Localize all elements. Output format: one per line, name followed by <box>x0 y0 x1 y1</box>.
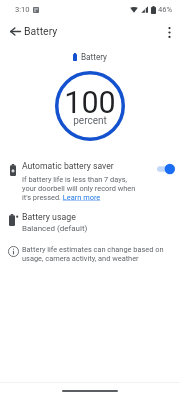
staticText: If battery life is less than 7 days, you… <box>22 175 140 202</box>
staticText: 3:10 <box>15 5 30 14</box>
staticText: Balanced (default) <box>22 224 88 233</box>
staticText: Battery usage <box>22 212 76 222</box>
staticText: Automatic battery saver <box>22 161 114 171</box>
staticText: 100 <box>64 85 116 121</box>
staticText: Battery life estimates can change based … <box>22 245 170 263</box>
staticText: percent <box>73 115 107 127</box>
button[interactable]: Automatic battery saver <box>152 158 180 180</box>
staticText: Battery <box>81 52 107 62</box>
button[interactable]: More options <box>157 20 180 44</box>
staticText: 46% <box>158 5 173 14</box>
button[interactable]: Battery usage <box>0 208 180 240</box>
button[interactable]: Back <box>3 19 27 43</box>
staticText: Battery <box>24 25 58 37</box>
button[interactable]: Automatic battery saver <box>0 155 180 210</box>
